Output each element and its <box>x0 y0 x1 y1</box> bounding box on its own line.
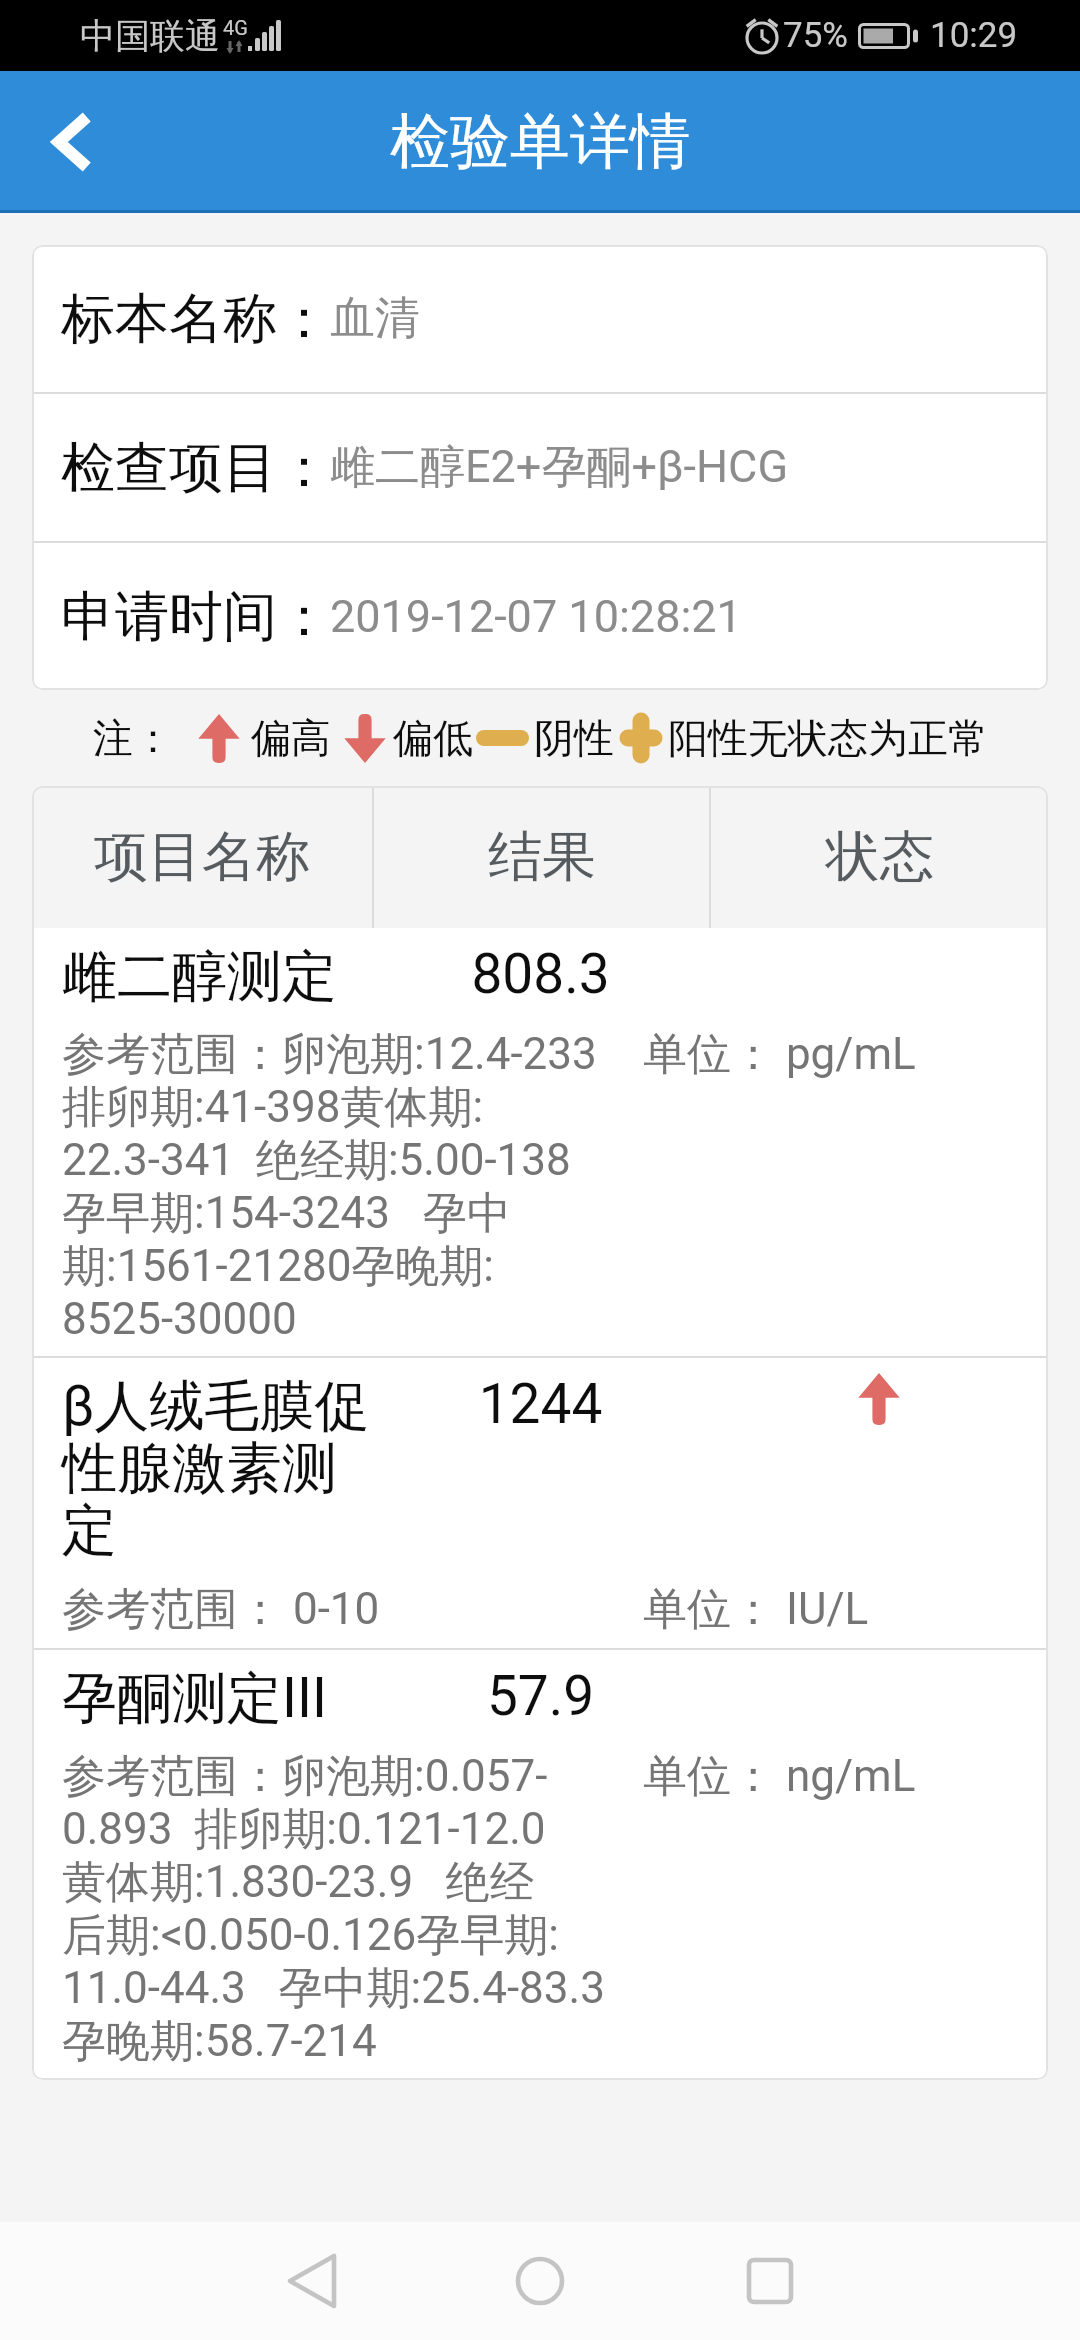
staticText: 偏低 <box>393 713 473 763</box>
staticText: 10:29 <box>930 15 1018 56</box>
staticText: 阳性无状态为正常 <box>668 713 988 763</box>
staticText: 项目名称 <box>94 823 310 891</box>
staticText: 1244 <box>372 1372 709 1436</box>
staticText: 参考范围：卵泡期:12.4-233 排卵期:41-398黄体期: 22.3-34… <box>62 1027 597 1345</box>
staticText: 注： <box>93 713 173 763</box>
staticText: 单位： pg/mL <box>643 1027 916 1082</box>
staticText: 57.9 <box>372 1664 709 1728</box>
staticText: 75% <box>783 15 848 56</box>
button[interactable]: Home <box>494 2235 586 2327</box>
staticText: 血清 <box>330 290 420 347</box>
staticText: 偏高 <box>251 713 331 763</box>
button[interactable]: Back <box>264 2235 356 2327</box>
staticText: 申请时间： <box>61 583 331 651</box>
staticText: 检验单详情 <box>390 104 690 180</box>
staticText: 单位： IU/L <box>643 1582 869 1637</box>
staticText: 雌二醇E2+孕酮+β-HCG <box>330 439 789 496</box>
staticText: 状态 <box>826 823 934 891</box>
staticText: 4G <box>223 16 248 39</box>
staticText: 参考范围： 0-10 <box>62 1582 380 1637</box>
staticText: 孕酮测定III <box>62 1664 372 1733</box>
staticText: 阴性 <box>534 713 614 763</box>
staticText: 2019-12-07 10:28:21 <box>330 590 742 643</box>
staticText: 检查项目： <box>61 434 331 502</box>
staticText: β人绒毛膜促 性腺激素测 定 <box>62 1372 372 1566</box>
staticText: 雌二醇测定 <box>62 942 372 1011</box>
button[interactable]: Back <box>24 96 116 188</box>
button[interactable]: Recents <box>724 2235 816 2327</box>
staticText: 结果 <box>488 823 596 891</box>
staticText: 中国联通 <box>80 14 220 58</box>
staticText: 参考范围：卵泡期:0.057- 0.893 排卵期:0.121-12.0 黄体期… <box>62 1749 605 2069</box>
staticText: 单位： ng/mL <box>643 1749 916 1804</box>
staticText: 808.3 <box>372 942 709 1006</box>
staticText: 标本名称： <box>61 285 331 353</box>
